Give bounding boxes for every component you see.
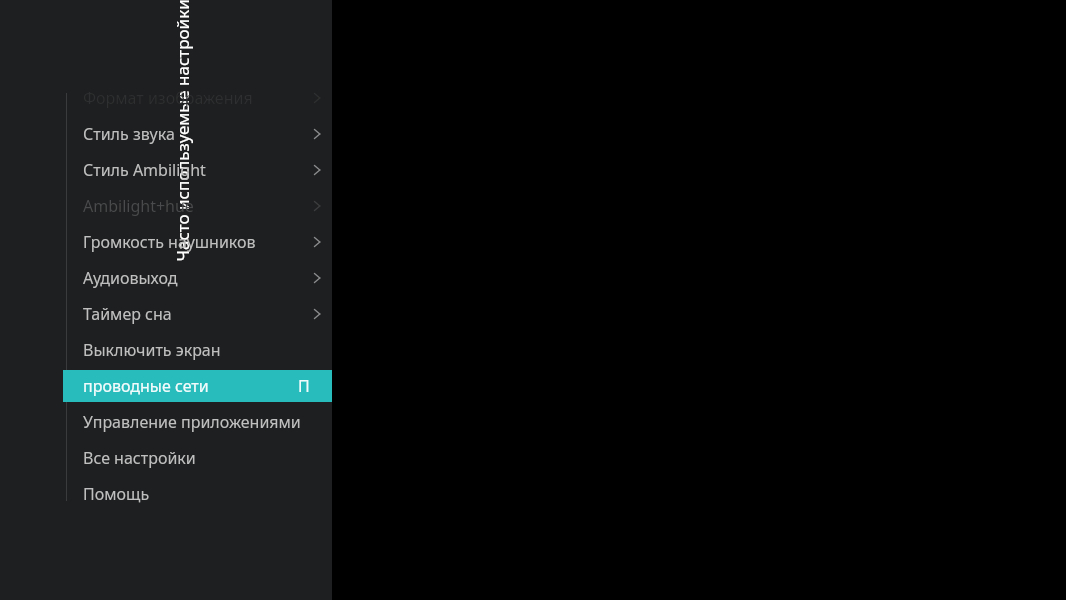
button[interactable]: проводные сети [0,368,332,404]
button[interactable]: Помощь [0,476,332,512]
other: Таймер сна [302,296,332,332]
staticText: Ambilight+hue [83,195,302,217]
button[interactable]: Ambilight+hue [0,188,332,224]
button[interactable]: Стиль звука [0,116,332,152]
button[interactable]: Таймер сна [0,296,332,332]
staticText: П [298,375,310,397]
staticText: Стиль звука [83,123,302,145]
other: Стиль Ambilight [302,152,332,188]
staticText: Помощь [83,483,332,505]
staticText: Аудиовыход [83,267,302,289]
button[interactable]: Выключить экран [0,332,332,368]
staticText: Часто используемые настройки [170,0,193,261]
button[interactable]: Формат изображения [0,80,332,116]
button[interactable]: Стиль Ambilight [0,152,332,188]
button[interactable]: Все настройки [0,440,332,476]
button[interactable]: Громкость наушников [0,224,332,260]
staticText: Управление приложениями [83,411,332,433]
staticText: Выключить экран [83,339,332,361]
other: Громкость наушников [302,224,332,260]
staticText: Стиль Ambilight [83,159,302,181]
button[interactable]: Аудиовыход [0,260,332,296]
staticText: Все настройки [83,447,332,469]
staticText: Громкость наушников [83,231,302,253]
staticText: проводные сети [83,375,298,397]
other: Стиль звука [302,116,332,152]
other: Ambilight+hue [302,188,332,224]
staticText: Формат изображения [83,87,302,109]
other: Аудиовыход [302,260,332,296]
button[interactable]: Управление приложениями [0,404,332,440]
staticText: Таймер сна [83,303,302,325]
